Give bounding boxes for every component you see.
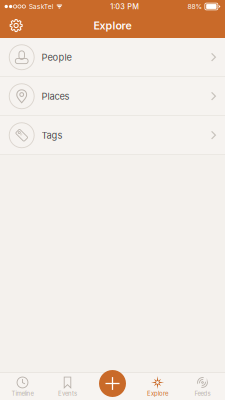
staticText: SaskTel: [29, 2, 54, 11]
staticText: Tags: [42, 130, 63, 141]
button[interactable]: People: [0, 38, 225, 76]
staticText: 1:03 PM: [110, 2, 139, 11]
staticText: People: [42, 52, 72, 63]
staticText: Timeline: [11, 390, 33, 397]
button[interactable]: Explore: [135, 372, 180, 400]
button[interactable]: [90, 372, 135, 400]
button[interactable]: Feeds: [180, 372, 225, 400]
button[interactable]: Add: [99, 370, 126, 397]
staticText: Events: [58, 390, 77, 397]
button[interactable]: Places: [0, 77, 225, 115]
staticText: Places: [42, 91, 70, 102]
button[interactable]: Tags: [0, 116, 225, 154]
staticText: Explore: [93, 19, 131, 32]
staticText: Explore: [147, 390, 168, 397]
staticText: 88%: [187, 2, 202, 11]
button[interactable]: Events: [45, 372, 90, 400]
staticText: Feeds: [194, 390, 210, 397]
button[interactable]: Timeline: [0, 372, 45, 400]
button[interactable]: Settings: [0, 13, 30, 38]
